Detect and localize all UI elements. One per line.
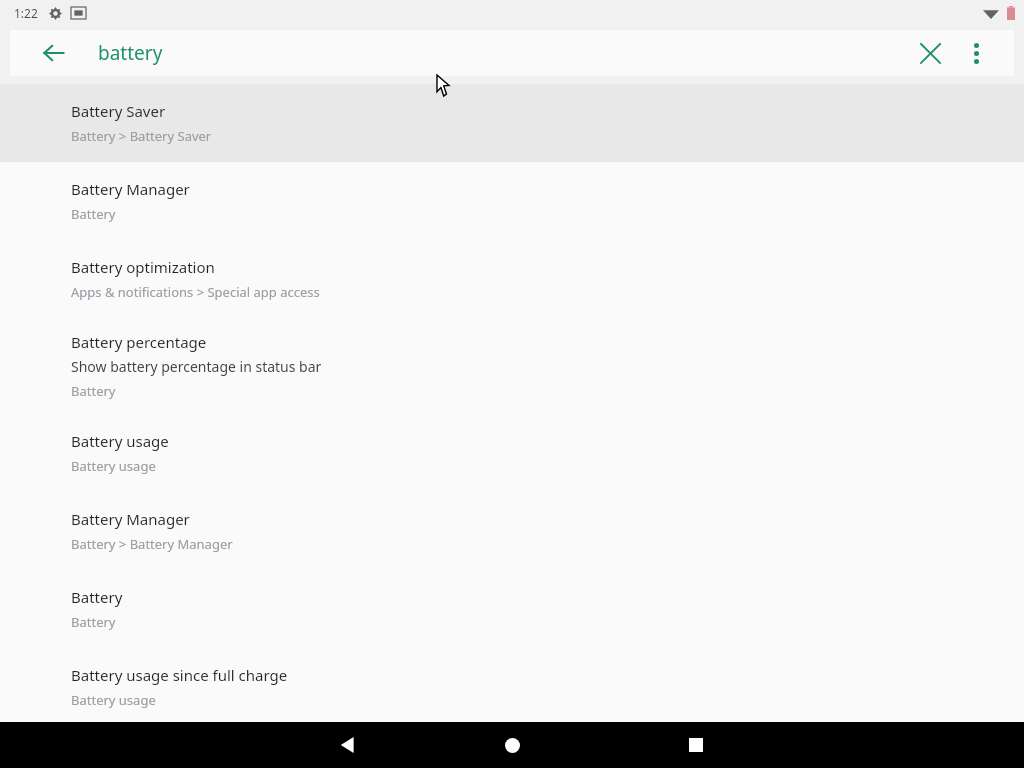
staticText: 1:22 xyxy=(14,5,38,21)
staticText: Battery > Battery Saver xyxy=(71,127,212,145)
staticText: Battery xyxy=(71,205,116,223)
button[interactable]: Battery percentage xyxy=(0,318,1024,414)
staticText: Battery > Battery Manager xyxy=(71,535,233,553)
button[interactable]: More options xyxy=(954,31,998,75)
staticText: Battery usage xyxy=(71,431,169,451)
staticText: Battery xyxy=(71,613,116,631)
button[interactable]: Battery optimization xyxy=(0,240,1024,318)
button[interactable]: Battery Manager xyxy=(0,162,1024,240)
button[interactable]: Back xyxy=(32,31,76,75)
button[interactable]: Battery usage since full charge xyxy=(0,648,1024,726)
button[interactable]: Home xyxy=(490,723,534,767)
staticText: Battery xyxy=(71,382,116,400)
button[interactable]: Back xyxy=(326,723,370,767)
button[interactable]: Battery Saver xyxy=(0,84,1024,162)
button[interactable]: Battery Manager xyxy=(0,492,1024,570)
staticText: Battery usage xyxy=(71,691,156,709)
staticText: Show battery percentage in status bar xyxy=(71,357,322,376)
staticText: Battery Saver xyxy=(71,101,166,121)
button[interactable]: Battery xyxy=(0,570,1024,648)
staticText: Battery percentage xyxy=(71,332,207,352)
staticText: Battery Manager xyxy=(71,509,190,529)
button[interactable]: Recent apps xyxy=(674,723,718,767)
staticText: Battery optimization xyxy=(71,257,215,277)
staticText: Battery usage xyxy=(71,457,156,475)
button[interactable]: Clear search xyxy=(908,31,952,75)
staticText: Battery xyxy=(71,587,123,607)
staticText: battery xyxy=(98,40,163,66)
staticText: Battery usage since full charge xyxy=(71,665,288,685)
staticText: Apps & notifications > Special app acces… xyxy=(71,283,320,301)
staticText: Battery Manager xyxy=(71,179,190,199)
button[interactable]: Battery usage xyxy=(0,414,1024,492)
